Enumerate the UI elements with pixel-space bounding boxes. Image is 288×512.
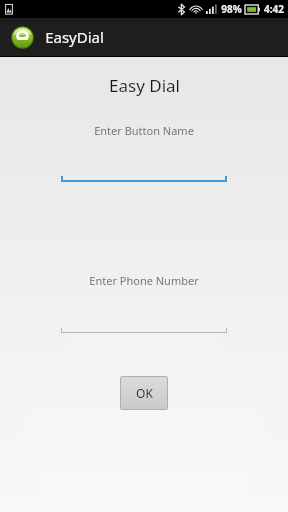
staticText: 98% xyxy=(221,2,242,16)
staticText: Easy Dial xyxy=(109,74,180,97)
staticText: EasyDial xyxy=(45,27,104,47)
staticText: Enter Phone Number xyxy=(89,273,199,288)
staticText: 4:42 xyxy=(264,2,284,16)
other: EasyDial app icon xyxy=(11,26,34,49)
staticText: Enter Button Name xyxy=(94,123,194,138)
button[interactable]: OK xyxy=(120,376,168,410)
button[interactable] xyxy=(61,325,227,333)
button[interactable] xyxy=(61,174,227,182)
staticText: OK xyxy=(136,385,153,401)
